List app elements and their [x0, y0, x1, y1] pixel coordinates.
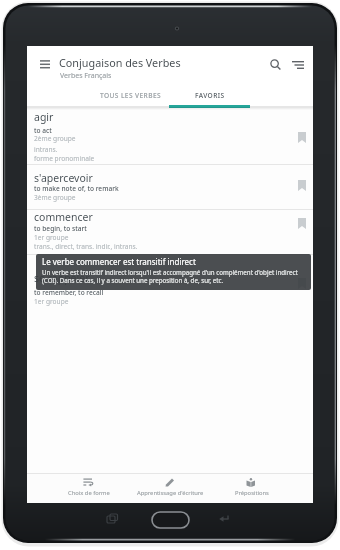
staticText: 2ème groupe [34, 134, 76, 143]
button[interactable] [27, 271, 313, 309]
staticText: Conjugaison des Verbes [59, 55, 181, 70]
staticText: agir [34, 110, 54, 124]
staticText: Le verbe commencer est transitif indirec… [42, 256, 196, 267]
staticText: trans., direct, trans. indir., intrans. [34, 242, 138, 251]
button[interactable]: Choix de forme [48, 475, 129, 503]
button[interactable] [298, 180, 306, 191]
staticText: Choix de forme [68, 489, 110, 497]
staticText: commencer [34, 210, 93, 224]
staticText: 3ème groupe [34, 193, 76, 202]
button[interactable] [298, 218, 306, 229]
button[interactable]: TOUS LES VERBES [90, 84, 171, 107]
button[interactable] [298, 132, 306, 143]
staticText: Verbes Français [60, 71, 112, 81]
button[interactable] [27, 171, 313, 209]
staticText: intrans. [34, 145, 58, 154]
staticText: FAVORIS [195, 91, 225, 100]
button[interactable] [270, 59, 281, 70]
staticText: to act [34, 126, 52, 135]
staticText: 1er groupe [34, 297, 69, 306]
staticText: (COI). Dans ce cas, il y a souvent une p… [42, 276, 224, 284]
staticText: to make note of, to remark [34, 184, 119, 193]
button[interactable] [27, 110, 313, 164]
button[interactable] [292, 61, 304, 69]
staticText: TOUS LES VERBES [100, 91, 161, 100]
staticText: to begin, to start [34, 224, 87, 233]
staticText: s'apercevoir [34, 171, 93, 185]
staticText: Apprentissage d'écriture [137, 489, 204, 497]
staticText: se rappeler [34, 271, 90, 285]
staticText: Un verbe est transitif indirect lorsqu'i… [42, 268, 298, 276]
staticText: forme pronominale [34, 154, 95, 163]
staticText: to remember, to recall [34, 288, 104, 297]
button[interactable]: Prépositions [211, 475, 292, 503]
button[interactable]: FAVORIS [169, 84, 250, 107]
button[interactable] [40, 60, 50, 69]
button[interactable] [27, 210, 313, 254]
staticText: Prépositions [235, 489, 269, 497]
staticText: 1er groupe [34, 233, 69, 242]
button[interactable]: Apprentissage d'écriture [130, 475, 211, 503]
